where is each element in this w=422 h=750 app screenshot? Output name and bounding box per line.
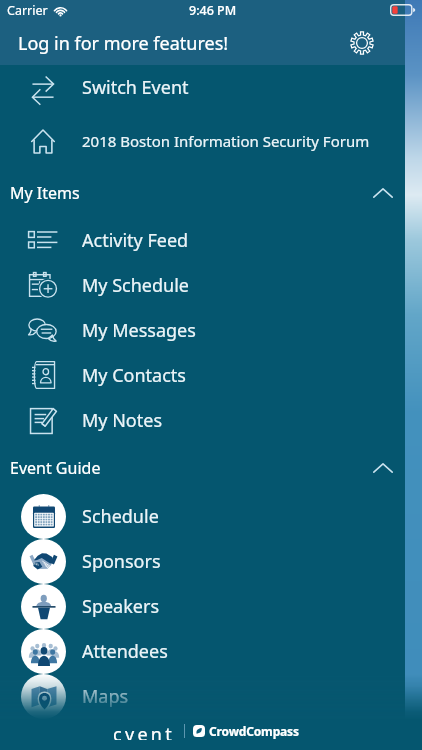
staticText: Schedule: [82, 504, 159, 529]
button[interactable]: Switch Event: [0, 65, 422, 110]
button[interactable]: 2018 Boston Information Security Forum: [0, 118, 422, 163]
staticText: cvent: [113, 722, 176, 740]
button[interactable]: My Messages: [0, 308, 422, 353]
button[interactable]: Log in for more features!: [0, 22, 422, 65]
staticText: My Items: [10, 182, 80, 204]
staticText: Speakers: [82, 594, 160, 619]
staticText: Carrier: [7, 2, 48, 19]
button[interactable]: Maps: [0, 674, 422, 719]
staticText: My Messages: [82, 318, 196, 343]
button[interactable]: My Notes: [0, 398, 422, 443]
button[interactable]: Event Guide: [0, 445, 422, 490]
button[interactable]: My Schedule: [0, 263, 422, 308]
staticText: 2018 Boston Information Security Forum: [82, 131, 370, 151]
button[interactable]: My Items: [0, 170, 422, 215]
button[interactable]: Sponsors: [0, 539, 422, 584]
button[interactable]: My Contacts: [0, 353, 422, 398]
staticText: CrowdCompass: [209, 723, 299, 739]
staticText: My Schedule: [82, 273, 189, 298]
staticText: Sponsors: [82, 549, 161, 574]
button[interactable]: Settings: [345, 26, 379, 60]
staticText: Activity Feed: [82, 228, 189, 253]
button[interactable]: Speakers: [0, 584, 422, 629]
staticText: 9:46 PM: [189, 2, 237, 19]
staticText: Maps: [82, 684, 129, 709]
button[interactable]: Schedule: [0, 494, 422, 539]
staticText: My Contacts: [82, 363, 186, 388]
button[interactable]: Attendees: [0, 629, 422, 674]
staticText: Event Guide: [10, 457, 101, 479]
staticText: My Notes: [82, 408, 163, 433]
button[interactable]: Activity Feed: [0, 218, 422, 263]
staticText: Switch Event: [82, 75, 189, 100]
staticText: Attendees: [82, 639, 168, 664]
staticText: Log in for more features!: [18, 31, 229, 56]
